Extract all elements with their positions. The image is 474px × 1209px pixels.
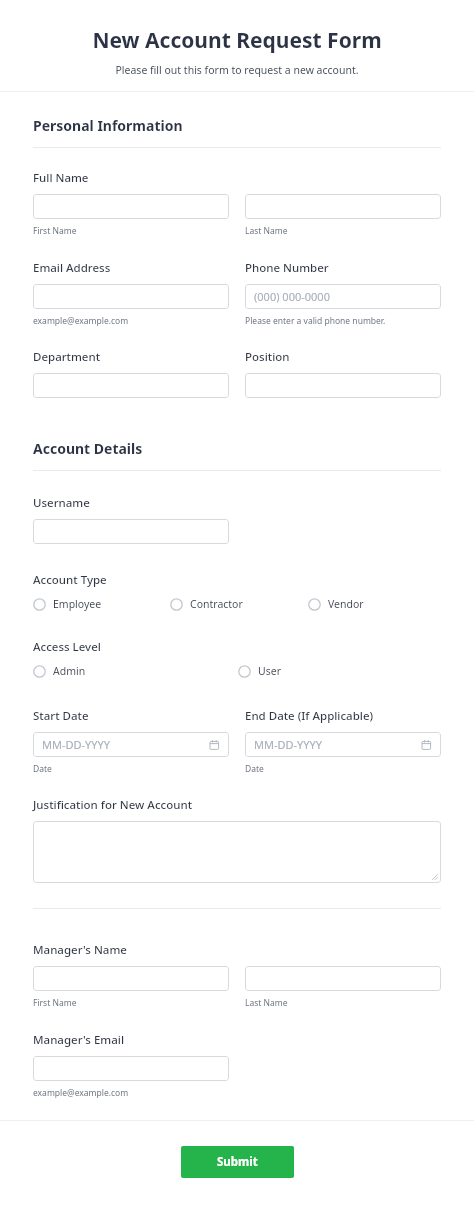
staticText: Employee [53, 597, 102, 611]
staticText: Justification for New Account [33, 797, 193, 813]
button[interactable]: Position [245, 373, 441, 398]
staticText: Date [33, 763, 52, 775]
staticText: First Name [33, 997, 77, 1009]
staticText: Manager's Name [33, 942, 127, 958]
button[interactable]: Phone Number [245, 284, 441, 309]
button[interactable]: Manager Last Name [245, 966, 441, 991]
staticText: Access Level [33, 639, 101, 655]
staticText: MM-DD-YYYY [42, 737, 111, 752]
button[interactable]: Vendor [308, 597, 364, 611]
staticText: Username [33, 495, 90, 511]
button[interactable]: Email Address [33, 284, 229, 309]
staticText: Admin [53, 664, 86, 678]
staticText: Department [33, 349, 101, 365]
staticText: Start Date [33, 708, 89, 724]
staticText: MM-DD-YYYY [254, 737, 323, 752]
staticText: Date [245, 763, 264, 775]
staticText: example@example.com [33, 1087, 129, 1099]
button[interactable]: Last Name [245, 194, 441, 219]
button[interactable]: Username [33, 519, 229, 544]
staticText: (000) 000-0000 [254, 289, 330, 304]
staticText: Please enter a valid phone number. [245, 315, 386, 327]
staticText: Account Type [33, 572, 107, 588]
staticText: Vendor [328, 597, 364, 611]
button[interactable]: Contractor [170, 597, 308, 611]
button[interactable]: First Name [33, 194, 229, 219]
staticText: Email Address [33, 260, 111, 276]
staticText: User [258, 664, 281, 678]
staticText: Manager's Email [33, 1032, 125, 1048]
button[interactable]: Start Date [33, 732, 229, 757]
staticText: End Date (If Applicable) [245, 708, 374, 724]
button[interactable]: Submit [181, 1146, 294, 1178]
staticText: First Name [33, 225, 77, 237]
staticText: Full Name [33, 170, 89, 186]
button[interactable]: End Date [245, 732, 441, 757]
button[interactable]: Employee [33, 597, 170, 611]
staticText: Phone Number [245, 260, 329, 276]
staticText: Account Details [33, 439, 143, 458]
button[interactable]: Justification for New Account [33, 821, 441, 883]
staticText: Submit [217, 1154, 258, 1170]
button[interactable]: User [238, 664, 281, 678]
button[interactable]: Admin [33, 664, 238, 678]
staticText: Last Name [245, 997, 288, 1009]
button[interactable]: Manager First Name [33, 966, 229, 991]
button[interactable]: Manager's Email [33, 1056, 229, 1081]
button[interactable]: Department [33, 373, 229, 398]
staticText: Contractor [190, 597, 243, 611]
staticText: Position [245, 349, 290, 365]
staticText: Last Name [245, 225, 288, 237]
staticText: example@example.com [33, 315, 129, 327]
staticText: New Account Request Form [0, 26, 474, 55]
staticText: Personal Information [33, 116, 183, 135]
staticText: Please fill out this form to request a n… [0, 63, 474, 77]
